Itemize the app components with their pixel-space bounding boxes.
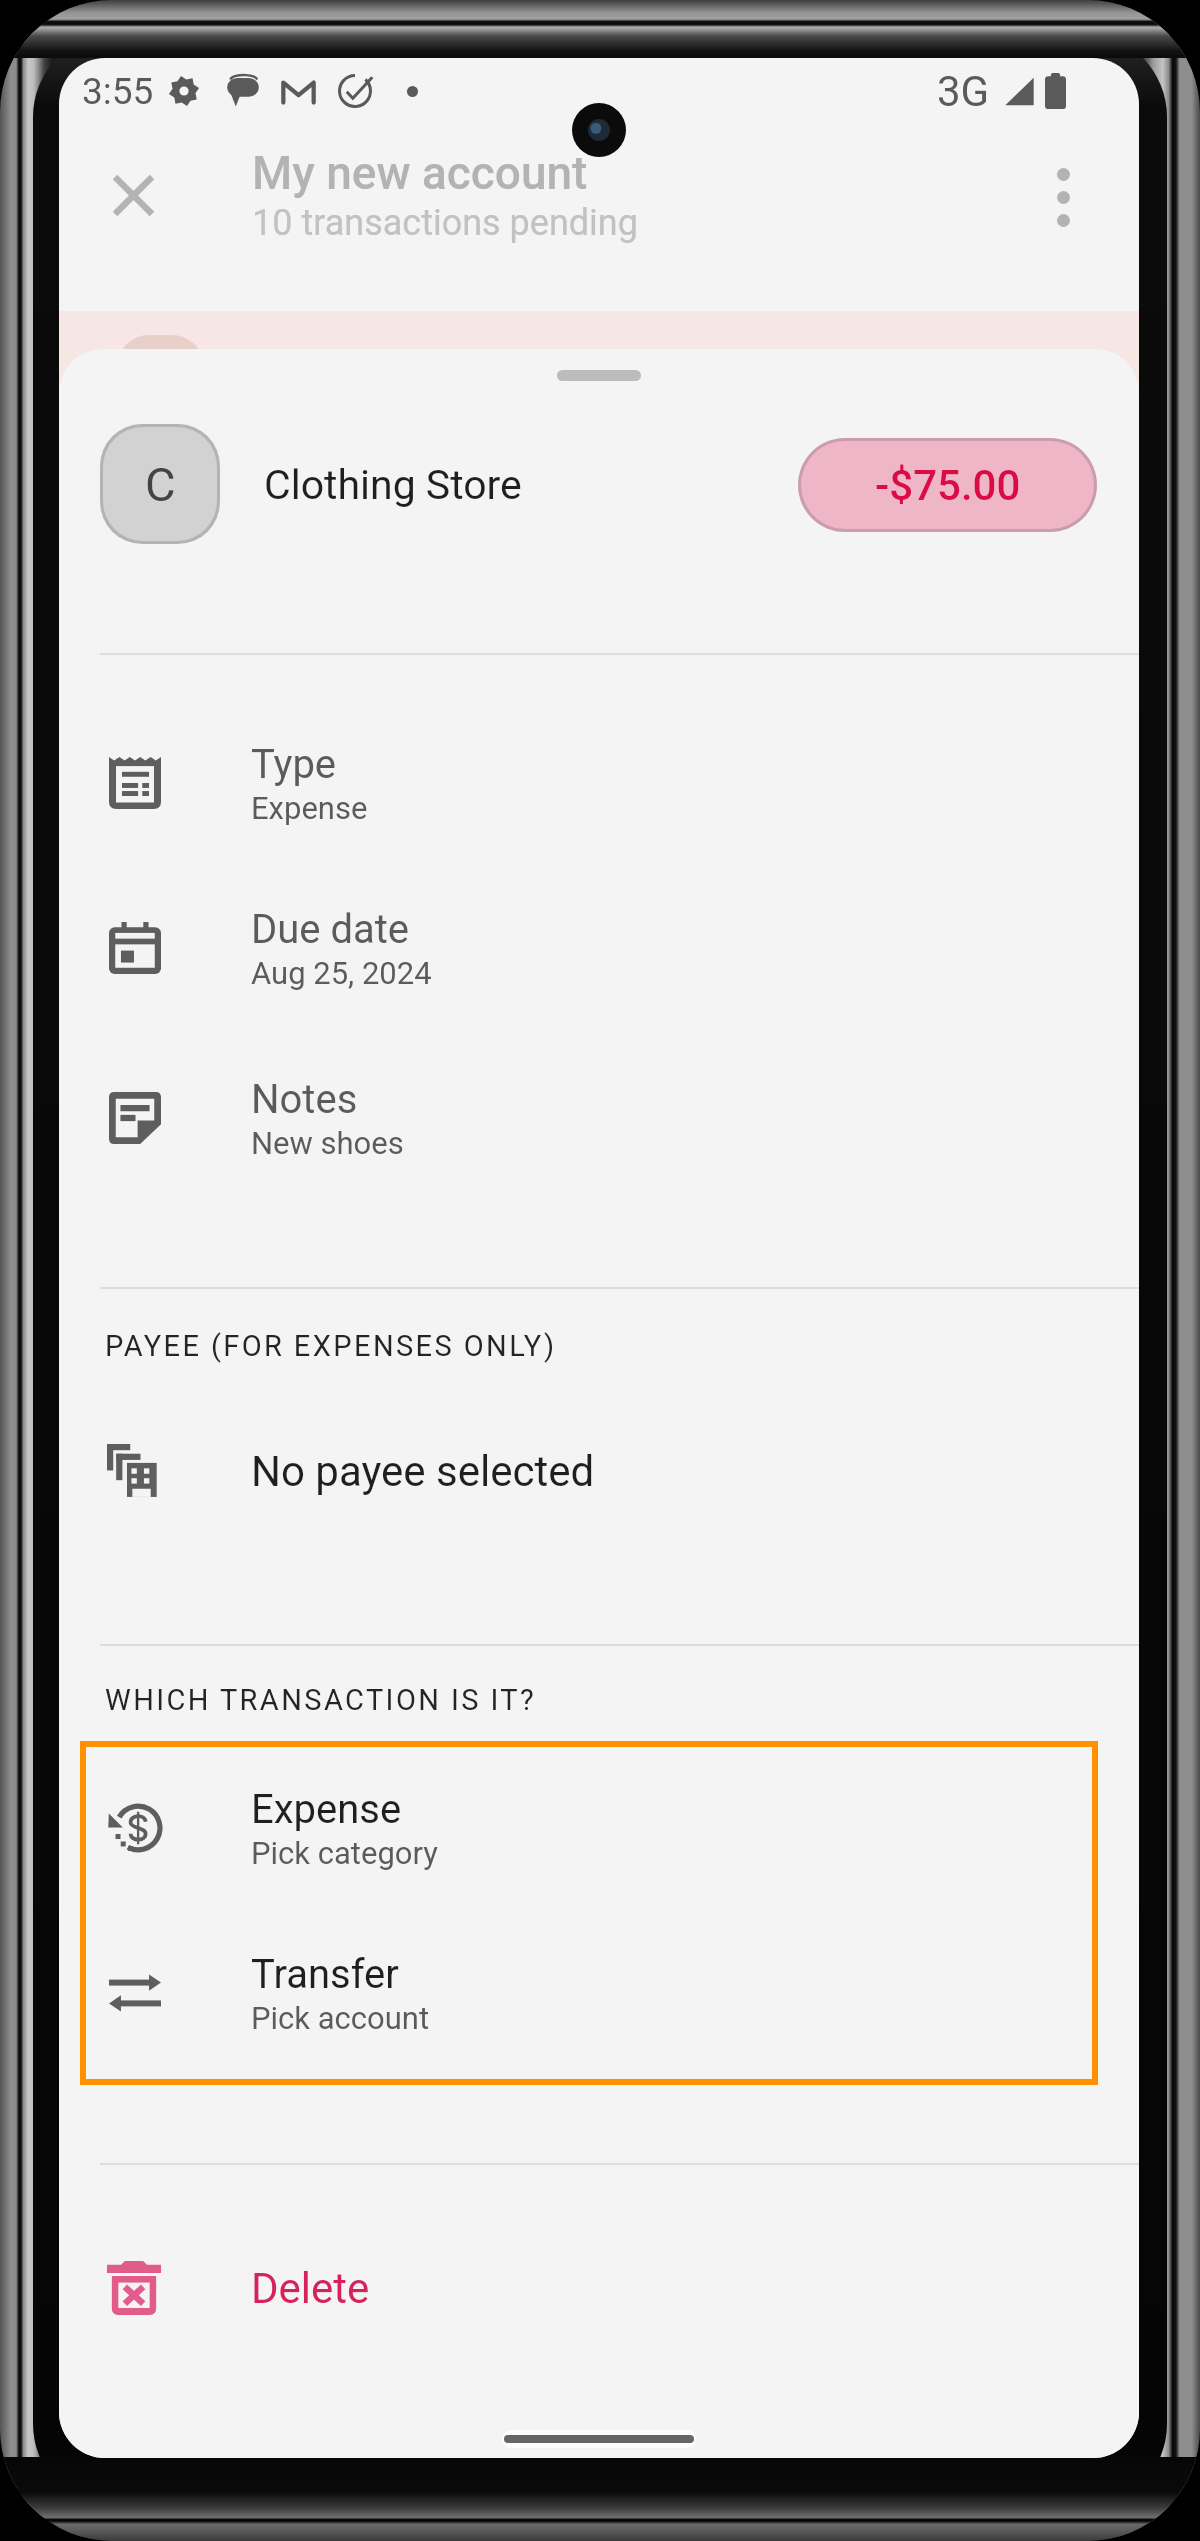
staticText: Notes — [251, 1076, 358, 1123]
staticText: Transfer — [251, 1951, 399, 1998]
staticText: -$75.00 — [875, 461, 1021, 510]
staticText: Aug 25, 2024 — [251, 955, 432, 991]
button[interactable]: Type — [59, 713, 1139, 853]
button[interactable]: Close — [73, 135, 193, 255]
staticText: Due date — [251, 906, 410, 953]
staticText: Expense — [251, 1786, 402, 1833]
button[interactable]: Delete — [59, 2228, 1139, 2348]
staticText: WHICH TRANSACTION IS IT? — [105, 1683, 537, 1717]
button[interactable]: More options — [1003, 137, 1123, 257]
staticText: Pick category — [251, 1835, 438, 1871]
staticText: 10 transactions pending — [252, 202, 638, 244]
button[interactable]: -$75.00 — [801, 441, 1094, 529]
staticText: Expense — [251, 790, 368, 826]
button[interactable]: Due date — [59, 878, 1139, 1018]
staticText: 3:55 — [82, 70, 154, 113]
staticText: PAYEE (FOR EXPENSES ONLY) — [105, 1329, 557, 1363]
staticText: Delete — [251, 2264, 370, 2313]
button[interactable]: No payee selected — [59, 1411, 1139, 1531]
button[interactable]: Expense — [59, 1758, 1139, 1898]
staticText: Clothing Store — [264, 461, 522, 509]
staticText: C — [145, 457, 176, 512]
staticText: Type — [251, 741, 337, 788]
staticText: My new account — [252, 146, 588, 200]
button[interactable]: Notes — [59, 1048, 1139, 1188]
staticText: No payee selected — [251, 1447, 595, 1496]
staticText: 3G — [937, 67, 990, 116]
button[interactable]: Drag handle — [517, 356, 681, 396]
staticText: New shoes — [251, 1125, 404, 1161]
staticText: Pick account — [251, 2000, 430, 2036]
button[interactable]: Transfer — [59, 1923, 1139, 2063]
